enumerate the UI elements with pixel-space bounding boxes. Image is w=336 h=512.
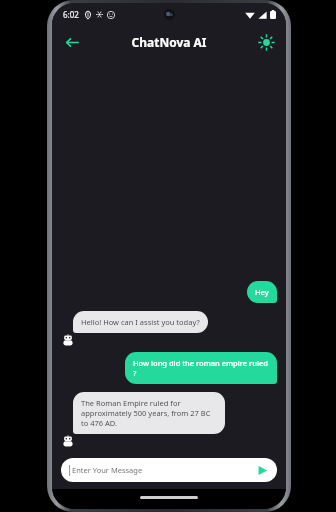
staticText: ChatNova AI — [131, 34, 207, 50]
other: Assistant — [62, 334, 74, 346]
button[interactable]: Hello! How can I assist you today? — [73, 311, 208, 333]
button[interactable]: Enter Your Message — [61, 458, 277, 482]
button[interactable]: Hey — [247, 281, 277, 303]
button[interactable]: How long did the roman empire ruled ? — [125, 352, 277, 384]
staticText: 6:02 — [63, 9, 79, 20]
button[interactable]: Send — [254, 462, 270, 478]
staticText: The Roman Empire ruled for approximately… — [81, 398, 217, 428]
staticText: How long did the roman empire ruled ? — [133, 358, 269, 378]
staticText: Hello! How can I assist you today? — [81, 317, 200, 327]
staticText: Hey — [255, 287, 269, 297]
button[interactable]: The Roman Empire ruled for approximately… — [73, 392, 225, 434]
staticText: Enter Your Message — [72, 465, 254, 475]
button[interactable]: Back — [58, 28, 86, 56]
other: Assistant — [62, 435, 74, 447]
button[interactable]: Toggle theme — [252, 28, 280, 56]
